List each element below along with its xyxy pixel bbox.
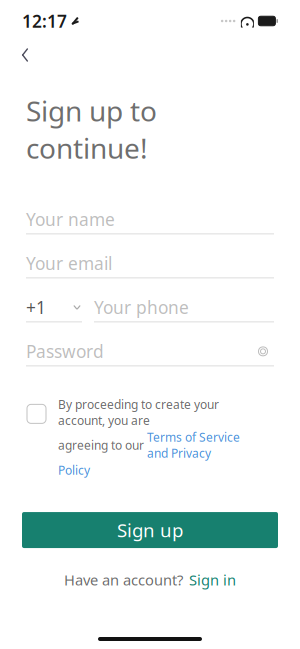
- staticText: Terms of Service and Privacy: [147, 429, 240, 461]
- button[interactable]: Back: [8, 40, 42, 70]
- staticText: agreeing to our: [58, 437, 147, 453]
- button[interactable]: Sign in: [189, 570, 236, 589]
- button[interactable]: Policy: [58, 462, 90, 478]
- button[interactable]: Agree to terms: [27, 404, 46, 423]
- button[interactable]: Show password: [252, 341, 274, 361]
- staticText: Have an account?: [64, 570, 183, 589]
- staticText: Your email: [26, 252, 112, 275]
- staticText: Policy: [58, 462, 90, 478]
- staticText: Sign up: [117, 518, 183, 542]
- staticText: Password: [26, 340, 104, 363]
- staticText: 12:17: [22, 9, 67, 32]
- staticText: Sign in: [189, 570, 236, 589]
- button[interactable]: +1: [26, 293, 82, 322]
- button[interactable]: Sign up: [22, 512, 278, 548]
- staticText: Sign up to continue!: [26, 92, 157, 166]
- staticText: +1: [26, 296, 46, 319]
- button[interactable]: Terms of Service and Privacy: [147, 429, 240, 461]
- staticText: Your name: [26, 208, 115, 231]
- staticText: Your phone: [94, 296, 189, 319]
- staticText: By proceeding to create your account, yo…: [58, 396, 219, 428]
